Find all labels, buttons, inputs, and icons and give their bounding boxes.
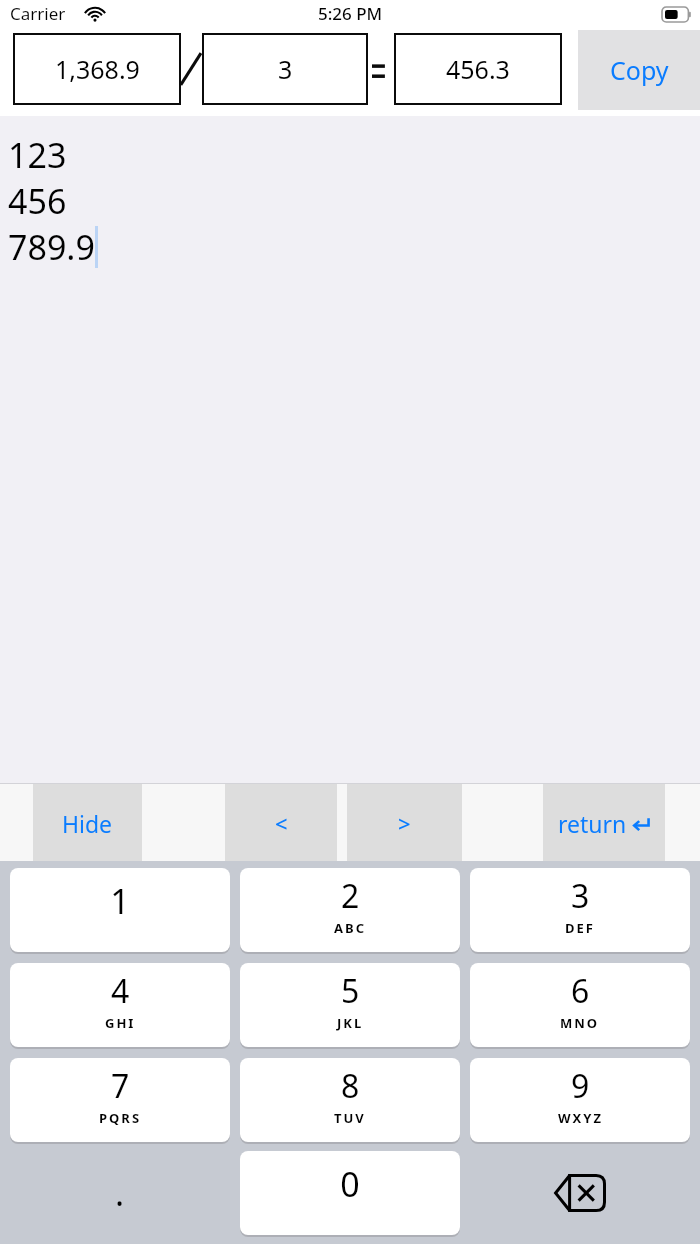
staticText: 8 [341, 1064, 360, 1108]
staticText: 7 [111, 1064, 130, 1108]
staticText: WXYZ [558, 1109, 603, 1127]
staticText: GHI [105, 1014, 136, 1032]
staticText: 1,368.9 [55, 52, 140, 86]
staticText: 5 [341, 969, 360, 1013]
button[interactable]: 6 [470, 963, 690, 1047]
button[interactable]: 8 [240, 1058, 460, 1142]
button[interactable]: 0 [240, 1151, 460, 1235]
staticText: 0 [340, 1161, 360, 1207]
button[interactable]: . [10, 1151, 230, 1235]
button[interactable]: Copy [578, 30, 700, 110]
staticText: return [558, 808, 627, 839]
button[interactable]: < [225, 784, 337, 862]
staticText: 1 [110, 878, 130, 924]
staticText: 2 [341, 874, 360, 918]
staticText: 3 [278, 52, 293, 86]
button[interactable]: 3 [202, 33, 368, 105]
staticText: 123 [8, 132, 67, 178]
button[interactable]: 2 [240, 868, 460, 952]
staticText: 456 [8, 178, 67, 224]
staticText: > [398, 808, 411, 838]
staticText: . [115, 1170, 125, 1216]
staticText: 456.3 [446, 52, 510, 86]
staticText: TUV [334, 1109, 366, 1127]
staticText: 789.9 [8, 224, 95, 270]
button[interactable]: 9 [470, 1058, 690, 1142]
button[interactable]: 456.3 [394, 33, 562, 105]
button[interactable]: 1,368.9 [13, 33, 181, 105]
staticText: MNO [560, 1014, 600, 1032]
button[interactable]: Backspace [470, 1151, 690, 1235]
button[interactable]: > [347, 784, 462, 862]
staticText: Carrier [10, 2, 66, 25]
staticText: < [275, 808, 288, 838]
staticText: JKL [337, 1014, 364, 1032]
button[interactable]: 1 [10, 868, 230, 952]
button[interactable]: 7 [10, 1058, 230, 1142]
staticText: PQRS [99, 1109, 142, 1127]
staticText: Hide [62, 808, 113, 839]
staticText: DEF [565, 919, 595, 937]
staticText: 9 [571, 1064, 590, 1108]
button[interactable]: Hide [33, 784, 142, 862]
staticText: 3 [571, 874, 590, 918]
button[interactable]: return [543, 784, 665, 862]
staticText: 6 [571, 969, 590, 1013]
staticText: 4 [111, 969, 130, 1013]
staticText: 5:26 PM [318, 2, 383, 25]
button[interactable]: 4 [10, 963, 230, 1047]
button[interactable]: 5 [240, 963, 460, 1047]
staticText: Copy [610, 53, 669, 87]
button[interactable]: 3 [470, 868, 690, 952]
staticText: ABC [334, 919, 366, 937]
